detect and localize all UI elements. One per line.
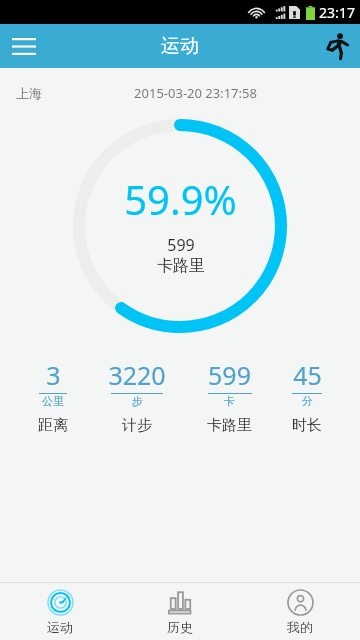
staticText: 运动 bbox=[47, 619, 73, 635]
staticText: 时长 bbox=[292, 416, 322, 435]
staticText: 卡 bbox=[224, 394, 235, 408]
staticText: 步 bbox=[132, 394, 143, 408]
staticText: 2015-03-20 23:17:58 bbox=[134, 84, 257, 102]
button[interactable]: 历史 bbox=[120, 583, 240, 640]
staticText: 上海 bbox=[16, 85, 42, 101]
staticText: 计步 bbox=[122, 416, 152, 435]
button[interactable]: Start run bbox=[314, 24, 360, 68]
staticText: 运动 bbox=[161, 34, 199, 58]
staticText: 3220 bbox=[108, 358, 166, 392]
button[interactable]: 3 bbox=[32, 358, 74, 435]
staticText: 公里 bbox=[42, 394, 64, 408]
staticText: 卡路里 bbox=[207, 416, 252, 435]
button[interactable]: 45 bbox=[286, 358, 328, 435]
staticText: 距离 bbox=[38, 416, 68, 435]
button[interactable]: 我的 bbox=[240, 583, 360, 640]
staticText: 卡路里 bbox=[157, 256, 205, 276]
staticText: 分 bbox=[302, 394, 313, 408]
button[interactable]: 3220 bbox=[102, 358, 172, 435]
button[interactable]: Menu bbox=[0, 24, 48, 68]
staticText: 3 bbox=[46, 358, 61, 392]
staticText: 45 bbox=[293, 358, 322, 392]
button[interactable]: 599 bbox=[201, 358, 258, 435]
staticText: 我的 bbox=[287, 619, 313, 635]
staticText: 23:17 bbox=[319, 3, 355, 22]
staticText: 历史 bbox=[167, 619, 193, 635]
staticText: 599 bbox=[167, 234, 195, 256]
staticText: 599 bbox=[208, 358, 251, 392]
staticText: 59.9% bbox=[124, 172, 237, 226]
button[interactable]: 运动 bbox=[0, 583, 120, 640]
